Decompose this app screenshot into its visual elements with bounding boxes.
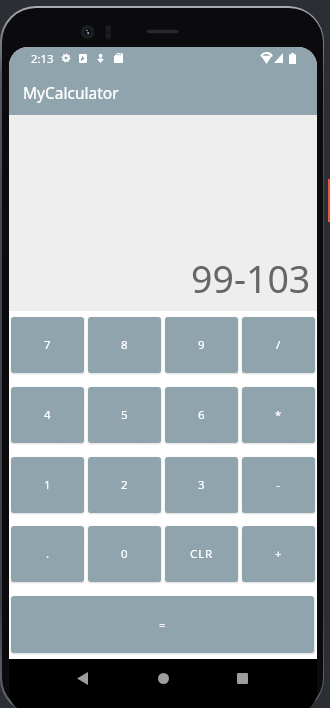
staticText: 8 [121, 337, 129, 353]
staticText: CLR [190, 546, 214, 562]
staticText: MyCalculator [23, 82, 119, 103]
button[interactable]: + [242, 526, 315, 582]
button[interactable]: 6 [165, 387, 238, 443]
button[interactable]: 4 [11, 387, 84, 443]
staticText: 2:13 [31, 51, 54, 66]
staticText: 7 [44, 337, 52, 353]
button[interactable]: / [242, 317, 315, 373]
staticText: . [46, 546, 50, 562]
button[interactable]: 9 [165, 317, 238, 373]
staticText: 2 [121, 477, 129, 493]
button[interactable]: 2 [88, 457, 161, 513]
button[interactable]: Home [151, 666, 175, 690]
button[interactable]: 3 [165, 457, 238, 513]
staticText: 1 [44, 477, 52, 493]
button[interactable]: Back [70, 666, 94, 690]
button[interactable]: CLR [165, 526, 238, 582]
staticText: 0 [121, 546, 129, 562]
staticText: + [275, 546, 283, 562]
staticText: / [276, 337, 282, 353]
button[interactable]: . [11, 526, 84, 582]
button[interactable]: 1 [11, 457, 84, 513]
staticText: 5 [121, 407, 129, 423]
staticText: 6 [198, 407, 206, 423]
button[interactable]: Recent apps [230, 666, 254, 690]
button[interactable]: 0 [88, 526, 161, 582]
button[interactable]: 8 [88, 317, 161, 373]
staticText: = [159, 617, 167, 633]
staticText: 4 [44, 407, 52, 423]
button[interactable]: - [242, 457, 315, 513]
staticText: 9 [198, 337, 206, 353]
button[interactable]: 5 [88, 387, 161, 443]
staticText: - [276, 477, 281, 493]
button[interactable]: MyCalculator [9, 69, 317, 115]
staticText: 99-103 [191, 253, 311, 304]
staticText: 3 [198, 477, 206, 493]
button[interactable]: 7 [11, 317, 84, 373]
staticText: * [275, 407, 283, 423]
button[interactable]: * [242, 387, 315, 443]
